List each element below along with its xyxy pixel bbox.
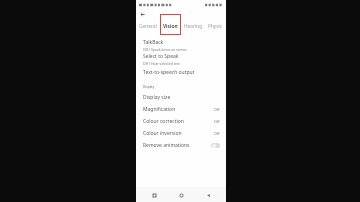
- staticText: Display: [143, 85, 155, 89]
- staticText: Display size: [143, 94, 171, 101]
- staticText: Select to Speak: [143, 53, 179, 60]
- button[interactable]: Home: [176, 190, 186, 200]
- staticText: Text-to-speech output: [143, 69, 195, 76]
- staticText: Off: [214, 119, 220, 124]
- button[interactable]: Back: [203, 190, 213, 200]
- staticText: Magnification: [143, 106, 176, 113]
- button[interactable]: Magnification: [136, 103, 226, 115]
- staticText: Off / Speak items on screen: [143, 47, 187, 52]
- staticText: Off / Hear selected text: [143, 61, 180, 66]
- button[interactable]: Remove animations: [136, 139, 226, 151]
- staticText: Colour inversion: [143, 130, 182, 137]
- button[interactable]: Text-to-speech output: [136, 66, 226, 79]
- staticText: Physic: [208, 23, 223, 30]
- button[interactable]: Colour correction: [136, 115, 226, 127]
- button[interactable]: Display size: [136, 91, 226, 103]
- button[interactable]: TalkBack: [136, 38, 226, 52]
- staticText: TalkBack: [143, 39, 164, 46]
- button[interactable]: Vision: [160, 18, 181, 35]
- staticText: General: [139, 23, 157, 30]
- button[interactable]: Recent apps: [149, 190, 159, 200]
- staticText: Off: [214, 131, 220, 136]
- button[interactable]: Select to Speak: [136, 52, 226, 66]
- staticText: Off: [214, 107, 220, 112]
- staticText: Hearing: [184, 23, 203, 30]
- staticText: Remove animations: [143, 142, 190, 149]
- button[interactable]: General: [136, 18, 160, 35]
- staticText: Colour correction: [143, 118, 184, 125]
- button[interactable]: Colour inversion: [136, 127, 226, 139]
- button[interactable]: Back: [138, 10, 146, 18]
- button[interactable]: Physic: [205, 18, 226, 35]
- staticText: Vision: [163, 23, 178, 30]
- button[interactable]: Hearing: [181, 18, 205, 35]
